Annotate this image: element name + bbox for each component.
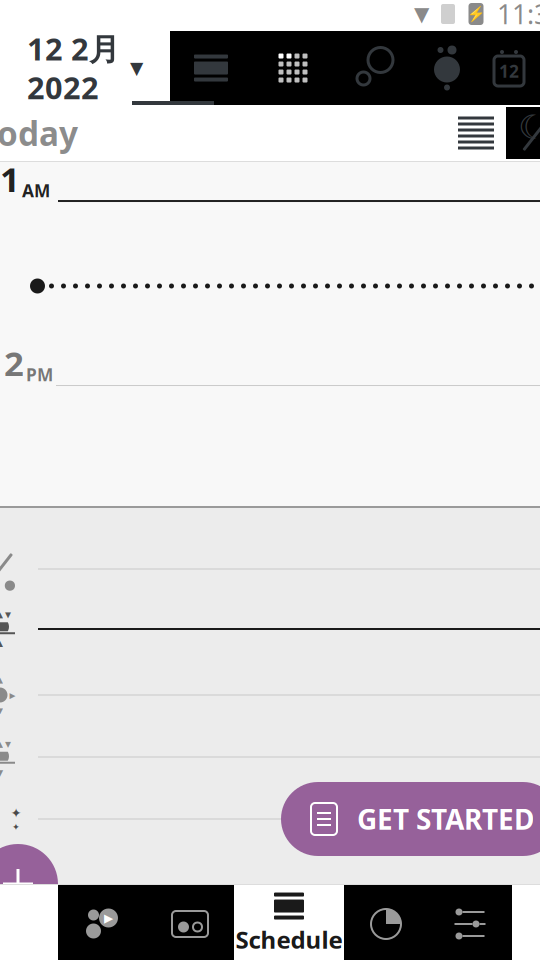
button[interactable]: Statistics <box>344 885 428 960</box>
staticText: Schedule <box>235 924 342 955</box>
staticText: ▼ <box>414 3 429 25</box>
button[interactable]: Calendar <box>478 31 540 105</box>
staticText: 12 2月 <box>27 28 120 69</box>
staticText: 2022 <box>27 67 99 108</box>
button[interactable]: Camera <box>146 885 234 960</box>
button[interactable]: Agenda list <box>446 107 506 159</box>
button[interactable]: Media <box>58 885 146 960</box>
staticText: 12 <box>0 340 24 386</box>
staticText: ✦ <box>12 822 20 832</box>
staticText: ▴ <box>0 673 3 686</box>
button[interactable]: Circles view <box>334 31 416 105</box>
staticText: ☾ <box>0 547 9 581</box>
staticText: Today <box>0 111 78 155</box>
staticText: AM <box>22 179 50 202</box>
staticText: ▸ <box>9 688 15 702</box>
staticText: ⚡ <box>467 6 485 22</box>
button[interactable]: Grid view <box>252 31 334 105</box>
staticText: ✦ <box>10 806 21 821</box>
staticText: 11:38 <box>497 0 540 32</box>
button[interactable]: Settings <box>428 885 512 960</box>
button[interactable]: Day and night <box>506 107 540 159</box>
staticText: ▾ <box>5 737 11 751</box>
staticText: ▶ <box>104 911 113 925</box>
staticText: 12 <box>499 59 519 82</box>
button[interactable]: GET STARTED <box>281 782 540 856</box>
staticText: ☾ <box>518 108 540 146</box>
staticText: ▴ <box>0 608 3 621</box>
staticText: 11 <box>0 156 20 202</box>
button[interactable]: Moon phase <box>416 31 478 105</box>
button[interactable]: 12 2月 <box>0 31 170 105</box>
staticText: PM <box>26 363 53 386</box>
button[interactable]: Add <box>0 844 58 924</box>
staticText: ▴ <box>0 635 3 650</box>
staticText: GET STARTED <box>357 800 534 838</box>
staticText: ▾ <box>0 703 3 717</box>
staticText: ▼ <box>130 58 143 78</box>
staticText: ▾ <box>0 765 3 780</box>
button[interactable]: Schedule <box>234 885 344 960</box>
staticText: ▾ <box>5 608 11 621</box>
staticText: ▴ <box>0 737 3 751</box>
button[interactable]: Schedule view <box>170 31 252 105</box>
